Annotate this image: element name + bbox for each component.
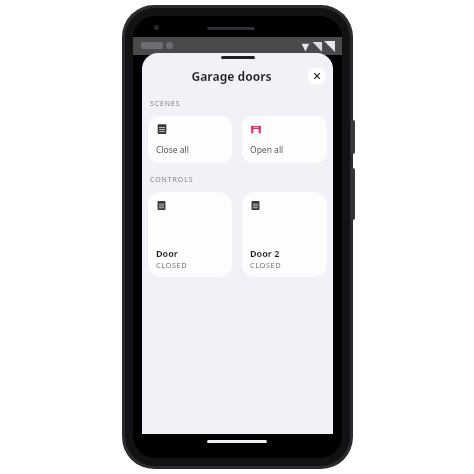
staticText: CONTROLS xyxy=(150,175,194,185)
button[interactable]: Close all xyxy=(148,116,232,163)
button[interactable]: Door xyxy=(148,192,232,277)
staticText: CLOSED xyxy=(250,260,282,270)
button[interactable]: Open all xyxy=(242,116,327,163)
button[interactable]: Door 2 xyxy=(242,192,327,277)
button[interactable]: Close xyxy=(308,67,326,85)
staticText: Close all xyxy=(156,144,189,156)
staticText: SCENES xyxy=(150,99,181,109)
staticText: Door 2 xyxy=(250,247,280,259)
staticText: CLOSED xyxy=(156,260,188,270)
staticText: Garage doors xyxy=(191,68,272,84)
staticText: Open all xyxy=(250,144,284,156)
staticText: Door xyxy=(156,247,178,259)
